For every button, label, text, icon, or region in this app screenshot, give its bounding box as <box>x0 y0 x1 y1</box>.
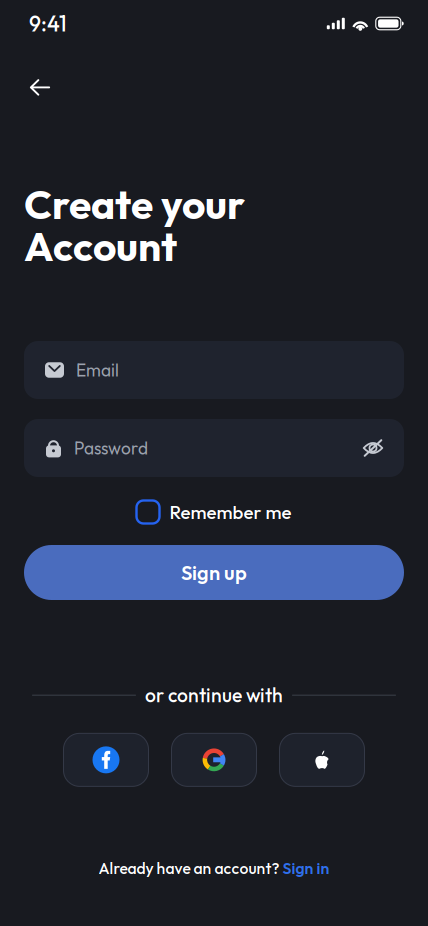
button[interactable]: Sign in <box>282 858 329 878</box>
staticText: Email <box>76 359 119 381</box>
button[interactable]: Continue with Apple <box>279 733 364 786</box>
staticText: Sign up <box>181 560 247 585</box>
staticText: or continue with <box>145 683 283 707</box>
staticText: 9:41 <box>29 10 67 37</box>
staticText: Account <box>24 220 177 272</box>
staticText: Remember me <box>169 500 291 524</box>
button[interactable]: Sign up <box>24 545 404 600</box>
button[interactable]: Continue with Facebook <box>63 733 148 786</box>
staticText: Already have an account? <box>98 858 282 878</box>
staticText: Create your <box>24 178 245 230</box>
button[interactable]: Continue with Google <box>171 733 256 786</box>
button[interactable]: Show password <box>362 438 384 458</box>
button[interactable]: Remember me <box>136 499 291 525</box>
button[interactable]: Back <box>18 65 62 109</box>
staticText: Password <box>74 437 148 459</box>
staticText: Sign in <box>282 858 329 878</box>
